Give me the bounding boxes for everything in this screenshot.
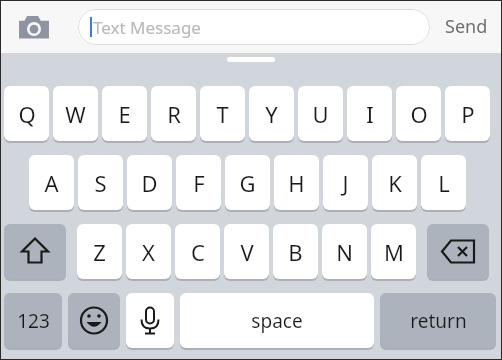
staticText: B xyxy=(288,237,303,267)
button[interactable]: Emoji xyxy=(68,293,120,348)
button[interactable]: D xyxy=(127,155,172,210)
staticText: Text Message xyxy=(93,16,201,39)
staticText: T xyxy=(216,99,229,129)
button[interactable]: S xyxy=(78,155,123,210)
button[interactable]: Send xyxy=(439,8,494,45)
button[interactable]: T xyxy=(200,86,245,141)
staticText: L xyxy=(438,168,450,198)
staticText: P xyxy=(461,99,475,129)
button[interactable]: N xyxy=(322,224,367,279)
staticText: K xyxy=(388,168,402,198)
staticText: R xyxy=(167,99,181,129)
staticText: W xyxy=(65,99,86,129)
button[interactable]: L xyxy=(421,155,466,210)
button[interactable]: V xyxy=(224,224,269,279)
button[interactable]: E xyxy=(102,86,147,141)
staticText: return xyxy=(410,308,467,334)
staticText: V xyxy=(240,237,254,267)
button[interactable]: C xyxy=(175,224,220,279)
staticText: 123 xyxy=(17,308,50,334)
staticText: N xyxy=(336,237,353,267)
button[interactable]: Text Message xyxy=(78,9,430,45)
button[interactable]: U xyxy=(298,86,343,141)
button[interactable]: return xyxy=(380,293,496,348)
button[interactable]: P xyxy=(445,86,490,141)
staticText: S xyxy=(94,168,107,198)
staticText: E xyxy=(118,99,131,129)
button[interactable]: K xyxy=(372,155,417,210)
button[interactable]: H xyxy=(274,155,319,210)
button[interactable]: A xyxy=(29,155,74,210)
staticText: C xyxy=(191,237,205,267)
staticText: I xyxy=(366,99,374,129)
button[interactable]: J xyxy=(323,155,368,210)
button[interactable]: O xyxy=(396,86,441,141)
button[interactable]: Drag handle xyxy=(227,57,275,62)
button[interactable]: Backspace xyxy=(427,224,489,279)
staticText: H xyxy=(288,168,305,198)
staticText: A xyxy=(44,168,59,198)
button[interactable]: W xyxy=(53,86,98,141)
staticText: U xyxy=(312,99,329,129)
staticText: Z xyxy=(93,237,106,267)
staticText: Send xyxy=(445,14,488,39)
button[interactable]: Dictation xyxy=(126,293,174,348)
button[interactable]: Y xyxy=(249,86,294,141)
button[interactable]: B xyxy=(273,224,318,279)
staticText: F xyxy=(193,168,205,198)
staticText: X xyxy=(142,237,155,267)
staticText: D xyxy=(141,168,158,198)
staticText: space xyxy=(251,308,303,334)
button[interactable]: F xyxy=(176,155,221,210)
button[interactable]: 123 xyxy=(4,293,62,348)
button[interactable]: Camera xyxy=(14,7,54,47)
staticText: M xyxy=(384,237,404,267)
button[interactable]: M xyxy=(371,224,416,279)
button[interactable]: I xyxy=(347,86,392,141)
button[interactable]: G xyxy=(225,155,270,210)
button[interactable]: Z xyxy=(77,224,122,279)
button[interactable]: X xyxy=(126,224,171,279)
button[interactable]: space xyxy=(180,293,374,348)
staticText: G xyxy=(239,168,256,198)
staticText: Q xyxy=(18,99,36,129)
button[interactable]: Q xyxy=(4,86,49,141)
button[interactable]: R xyxy=(151,86,196,141)
staticText: O xyxy=(410,99,428,129)
staticText: Y xyxy=(265,99,278,129)
staticText: J xyxy=(342,168,349,198)
button[interactable]: Shift xyxy=(4,224,66,279)
